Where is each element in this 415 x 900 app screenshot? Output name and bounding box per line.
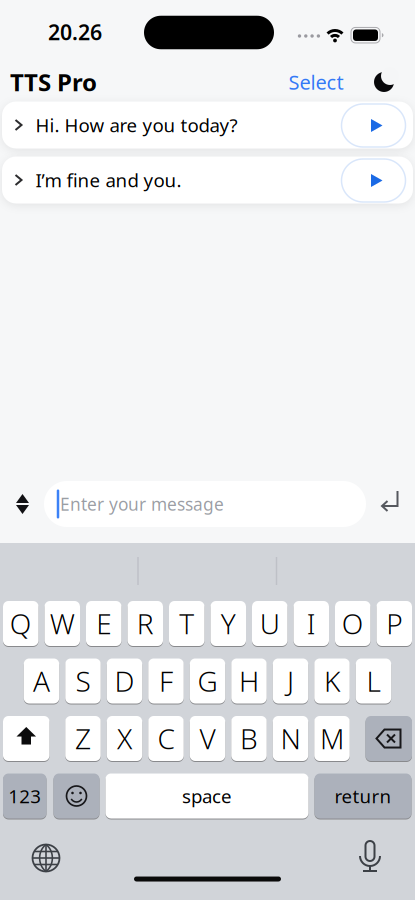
staticText: 20.26 xyxy=(48,18,102,46)
button[interactable]: Y xyxy=(210,601,246,646)
staticText: N xyxy=(280,720,300,757)
staticText: space xyxy=(182,784,232,808)
button[interactable]: E xyxy=(86,601,121,646)
button[interactable]: H xyxy=(231,658,267,703)
staticText: I’m fine and you. xyxy=(35,168,181,192)
button[interactable]: D xyxy=(107,658,142,703)
button[interactable]: Delete xyxy=(365,716,412,761)
staticText: Enter your message xyxy=(60,492,224,515)
staticText: TTS Pro xyxy=(10,66,97,98)
staticText: Y xyxy=(221,605,236,642)
button[interactable]: 123 xyxy=(3,773,46,818)
button[interactable]: return xyxy=(314,773,411,818)
button[interactable]: R xyxy=(127,601,163,646)
staticText: E xyxy=(96,605,111,642)
button[interactable]: X xyxy=(107,716,142,761)
staticText: O xyxy=(342,605,364,642)
staticText: U xyxy=(260,605,280,642)
staticText: P xyxy=(386,605,402,642)
button[interactable]: Dark mode xyxy=(370,66,400,98)
staticText: V xyxy=(199,720,215,757)
button[interactable]: J xyxy=(273,658,308,703)
staticText: D xyxy=(114,662,134,700)
staticText: return xyxy=(334,784,391,808)
staticText: M xyxy=(320,720,344,757)
staticText: B xyxy=(240,720,258,757)
staticText: A xyxy=(33,662,50,700)
staticText: F xyxy=(159,662,173,700)
button[interactable]: Next keyboard xyxy=(30,842,62,874)
button[interactable]: T xyxy=(169,601,204,646)
staticText: Select xyxy=(288,69,343,95)
button[interactable]: B xyxy=(231,716,267,761)
button[interactable]: C xyxy=(148,716,184,761)
staticText: 123 xyxy=(8,784,41,808)
staticText: C xyxy=(157,720,174,757)
staticText: L xyxy=(366,662,380,700)
button[interactable]: I’m fine and you. xyxy=(2,156,413,203)
staticText: G xyxy=(197,662,217,700)
staticText: Q xyxy=(10,605,32,642)
button[interactable]: K xyxy=(314,658,350,703)
staticText: R xyxy=(137,605,154,642)
button[interactable]: Dictate xyxy=(355,840,385,872)
staticText: T xyxy=(179,605,194,642)
button[interactable]: O xyxy=(335,601,370,646)
staticText: S xyxy=(75,662,90,700)
button[interactable]: F xyxy=(148,658,184,703)
staticText: H xyxy=(239,662,259,700)
button[interactable]: I xyxy=(293,601,329,646)
button[interactable]: Emoji xyxy=(53,773,99,818)
staticText: X xyxy=(117,720,132,757)
button[interactable]: Select xyxy=(271,67,361,97)
button[interactable]: Hi. How are you today? xyxy=(2,101,413,148)
button[interactable]: W xyxy=(44,601,80,646)
button[interactable]: N xyxy=(273,716,308,761)
button[interactable]: V xyxy=(190,716,225,761)
staticText: W xyxy=(50,605,75,642)
staticText: Hi. How are you today? xyxy=(35,113,237,137)
button[interactable]: Z xyxy=(65,716,101,761)
staticText: J xyxy=(287,662,294,700)
button[interactable]: Q xyxy=(3,601,38,646)
button[interactable]: M xyxy=(314,716,350,761)
button[interactable]: G xyxy=(190,658,225,703)
staticText: Z xyxy=(75,720,91,757)
button[interactable]: S xyxy=(65,658,101,703)
button[interactable]: space xyxy=(105,773,308,818)
button[interactable]: Play xyxy=(341,159,405,202)
button[interactable]: Shift xyxy=(3,716,49,761)
button[interactable]: A xyxy=(24,658,59,703)
button[interactable]: L xyxy=(356,658,391,703)
button[interactable]: P xyxy=(376,601,412,646)
button[interactable]: Adjust xyxy=(14,492,31,516)
button[interactable]: Play xyxy=(341,104,405,147)
button[interactable]: U xyxy=(252,601,287,646)
button[interactable]: Enter your message xyxy=(44,481,366,527)
button[interactable]: Send xyxy=(381,490,399,512)
staticText: K xyxy=(324,662,340,700)
staticText: I xyxy=(307,605,316,642)
